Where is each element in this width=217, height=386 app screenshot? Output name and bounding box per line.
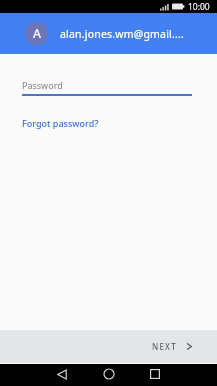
button[interactable]: NEXT <box>152 341 217 352</box>
button[interactable]: A <box>25 22 48 45</box>
button[interactable] <box>99 364 119 384</box>
staticText: NEXT <box>152 341 177 352</box>
staticText: 10:00 <box>188 1 210 13</box>
button[interactable]: Forgot password? <box>22 117 99 129</box>
staticText: alan.jones.wm@gmail.... <box>60 27 185 41</box>
button[interactable] <box>146 365 164 383</box>
staticText: Forgot password? <box>22 117 99 129</box>
button[interactable] <box>53 365 71 384</box>
staticText: A <box>33 25 41 42</box>
staticText: Password <box>22 79 63 91</box>
